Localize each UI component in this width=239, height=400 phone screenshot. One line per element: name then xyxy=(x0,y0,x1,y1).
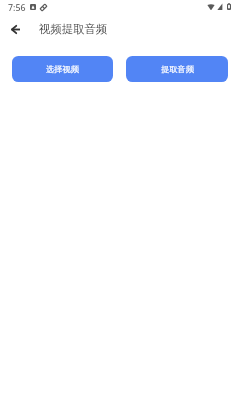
button[interactable]: 选择视频 xyxy=(12,56,113,82)
staticText: 选择视频 xyxy=(46,64,79,74)
staticText: 提取音频 xyxy=(161,64,194,74)
button[interactable]: Back xyxy=(3,17,27,41)
staticText: 视频提取音频 xyxy=(39,22,108,36)
staticText: 7:56 xyxy=(8,2,26,14)
button[interactable]: 提取音频 xyxy=(126,56,228,82)
